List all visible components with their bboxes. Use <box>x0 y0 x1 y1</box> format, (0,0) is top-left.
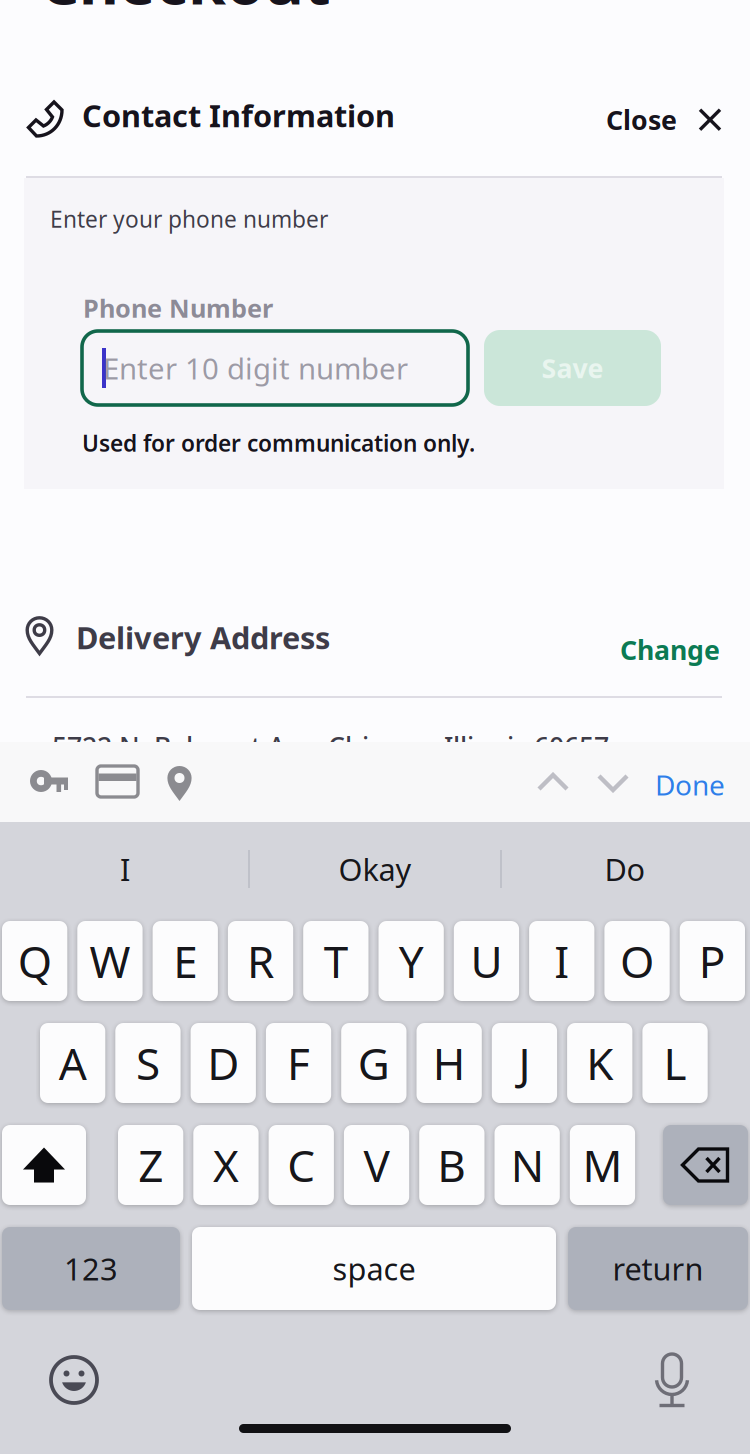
button[interactable]: J <box>492 1023 557 1103</box>
staticText: Q <box>18 932 52 990</box>
button[interactable]: R <box>228 921 293 1001</box>
button[interactable]: Do <box>502 836 748 902</box>
button[interactable]: G <box>341 1023 406 1103</box>
button[interactable]: F <box>266 1023 331 1103</box>
staticText: D <box>207 1034 239 1092</box>
staticText: Used for order communication only. <box>82 428 475 458</box>
staticText: E <box>173 932 197 990</box>
staticText: C <box>287 1136 315 1194</box>
button[interactable]: Y <box>378 921 444 1001</box>
staticText: G <box>358 1034 390 1092</box>
staticText: M <box>582 1136 622 1194</box>
staticText: Z <box>138 1136 163 1194</box>
staticText: X <box>213 1136 239 1194</box>
staticText: Phone Number <box>83 291 273 325</box>
staticText: S <box>136 1034 160 1092</box>
staticText: N <box>511 1136 544 1194</box>
button[interactable]: 123 <box>2 1227 180 1310</box>
staticText: A <box>59 1034 87 1092</box>
button[interactable]: K <box>567 1023 632 1103</box>
button[interactable]: Okay <box>250 836 500 902</box>
staticText: T <box>324 932 348 990</box>
staticText: Close <box>606 102 677 137</box>
staticText: 123 <box>64 1248 118 1289</box>
button[interactable]: H <box>416 1023 482 1103</box>
button[interactable]: M <box>570 1125 635 1205</box>
button[interactable]: U <box>454 921 519 1001</box>
button[interactable]: B <box>419 1125 484 1205</box>
button[interactable]: S <box>115 1023 181 1103</box>
staticText: U <box>470 932 502 990</box>
button[interactable]: W <box>77 921 143 1001</box>
button[interactable]: Dictation <box>654 1350 690 1406</box>
staticText: I <box>554 932 569 990</box>
button[interactable]: Passwords <box>30 764 70 798</box>
button[interactable]: Z <box>118 1125 183 1205</box>
staticText: return <box>612 1248 703 1289</box>
staticText: R <box>247 932 274 990</box>
staticText: J <box>518 1034 530 1092</box>
button[interactable]: N <box>494 1125 560 1205</box>
button[interactable]: I <box>2 836 248 902</box>
button[interactable]: Addresses <box>164 764 195 804</box>
staticText: K <box>586 1034 613 1092</box>
staticText: V <box>363 1136 389 1194</box>
staticText: Contact Information <box>82 95 395 136</box>
button[interactable]: Save <box>484 330 661 406</box>
staticText: Save <box>541 350 603 386</box>
button[interactable]: Change <box>620 624 720 675</box>
button[interactable]: Previous field <box>537 772 569 793</box>
button[interactable]: Shift <box>2 1125 86 1205</box>
button[interactable]: Scan credit card <box>97 766 138 797</box>
button[interactable]: E <box>153 921 218 1001</box>
button[interactable]: Emoji <box>50 1356 98 1404</box>
staticText: Done <box>655 766 725 803</box>
staticText: Change <box>620 632 720 667</box>
staticText: W <box>89 932 130 990</box>
button[interactable]: T <box>303 921 368 1001</box>
button[interactable]: Next field <box>597 772 629 793</box>
staticText: O <box>620 932 654 990</box>
button[interactable]: X <box>193 1125 259 1205</box>
button[interactable]: Close <box>606 94 722 145</box>
staticText: P <box>699 932 726 990</box>
button[interactable]: space <box>192 1227 556 1310</box>
staticText: L <box>663 1034 686 1092</box>
staticText: Checkout <box>40 0 331 21</box>
button[interactable]: D <box>191 1023 256 1103</box>
staticText: space <box>332 1248 415 1289</box>
staticText: H <box>433 1034 466 1092</box>
button[interactable]: I <box>529 921 594 1001</box>
staticText: F <box>287 1034 310 1092</box>
button[interactable]: Q <box>2 921 67 1001</box>
button[interactable]: O <box>604 921 670 1001</box>
button[interactable]: A <box>40 1023 105 1103</box>
button[interactable]: P <box>680 921 745 1001</box>
button[interactable]: V <box>344 1125 409 1205</box>
staticText: Enter 10 digit number <box>103 348 408 387</box>
button[interactable]: L <box>642 1023 708 1103</box>
staticText: 5722 N. Belmont Ave, Chicago, Illinois 6… <box>52 729 609 764</box>
staticText: Enter your phone number <box>50 204 328 234</box>
button[interactable]: return <box>568 1227 748 1310</box>
button[interactable]: C <box>269 1125 334 1205</box>
staticText: Okay <box>338 849 411 889</box>
staticText: Y <box>399 932 424 990</box>
staticText: Do <box>604 849 645 889</box>
staticText: Delivery Address <box>76 617 330 658</box>
button[interactable]: Done <box>655 766 725 803</box>
staticText: B <box>437 1136 466 1194</box>
button[interactable]: Delete <box>663 1125 748 1205</box>
staticText: I <box>120 849 130 889</box>
